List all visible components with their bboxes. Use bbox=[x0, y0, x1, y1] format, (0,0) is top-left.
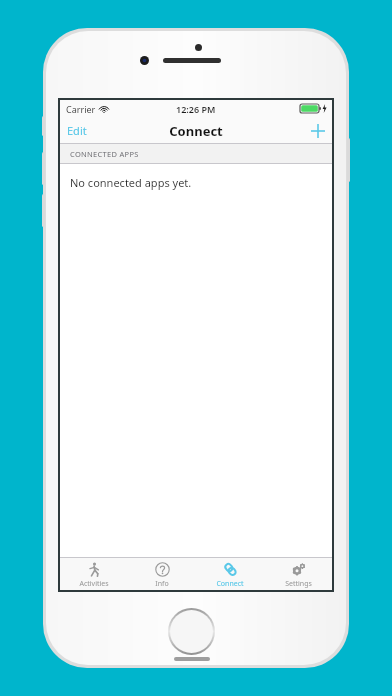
staticText: Settings bbox=[285, 579, 312, 589]
staticText: No connected apps yet. bbox=[70, 175, 192, 190]
button[interactable]: Settings bbox=[264, 558, 332, 590]
button[interactable]: Home bbox=[170, 610, 213, 653]
staticText: Activities bbox=[79, 579, 109, 589]
staticText: Carrier bbox=[66, 103, 96, 115]
staticText: Connect bbox=[216, 579, 244, 589]
button[interactable]: Connect bbox=[196, 558, 264, 590]
button[interactable]: Activities bbox=[60, 558, 128, 590]
button[interactable]: Add bbox=[304, 121, 332, 141]
button[interactable]: Edit bbox=[60, 119, 94, 142]
button[interactable]: Info bbox=[128, 558, 196, 590]
staticText: CONNECTED APPS bbox=[70, 149, 139, 159]
staticText: Edit bbox=[67, 123, 87, 138]
staticText: 12:26 PM bbox=[176, 103, 216, 115]
staticText: Connect bbox=[169, 122, 223, 140]
staticText: Info bbox=[155, 579, 169, 589]
